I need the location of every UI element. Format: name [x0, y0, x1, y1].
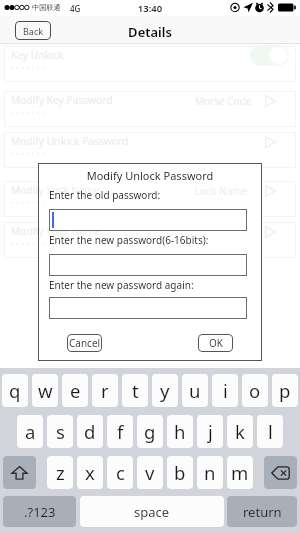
staticText: 中国联通 — [32, 3, 61, 12]
staticText: Key Unlock — [11, 48, 64, 62]
staticText: b — [174, 460, 186, 485]
button[interactable]: p — [272, 374, 298, 407]
button[interactable]: Modify User Name — [4, 222, 296, 258]
button[interactable]: z — [47, 456, 73, 489]
staticText: l — [268, 419, 273, 444]
staticText: Modify Unlock Password — [11, 134, 129, 148]
staticText: w — [38, 378, 53, 403]
staticText: d — [84, 419, 96, 444]
staticText: 4G — [70, 3, 81, 14]
button[interactable]: .?123 — [3, 496, 76, 527]
staticText: q — [9, 378, 21, 403]
staticText: u — [189, 378, 201, 403]
staticText: • • • • • • • — [11, 197, 45, 208]
staticText: 13:40 — [0, 2, 300, 15]
staticText: • • • • • • • — [11, 197, 45, 208]
staticText: z — [56, 460, 65, 485]
button[interactable] — [49, 209, 247, 231]
button[interactable]: Modify User Name — [4, 222, 296, 258]
button[interactable]: Modify Key Password — [4, 91, 296, 127]
staticText: Modify Unlock Password — [11, 134, 129, 148]
staticText: Enter the new password again: — [49, 278, 194, 292]
button[interactable]: x — [77, 456, 103, 489]
button[interactable]: OK — [198, 334, 233, 352]
button[interactable]: space — [80, 496, 224, 527]
button[interactable]: return — [227, 496, 297, 527]
button[interactable]: k — [227, 415, 253, 448]
button[interactable]: Modify Lock Name — [4, 181, 296, 217]
button[interactable]: h — [167, 415, 193, 448]
staticText: Enter the old password: — [49, 188, 161, 202]
button[interactable]: o — [242, 374, 268, 407]
button[interactable]: a — [17, 415, 43, 448]
button[interactable]: c — [107, 456, 133, 489]
button[interactable]: v — [137, 456, 163, 489]
staticText: Details — [0, 23, 300, 41]
staticText: g — [144, 419, 156, 444]
button[interactable]: g — [137, 415, 163, 448]
button[interactable]: l — [257, 415, 283, 448]
staticText: Back — [23, 25, 44, 37]
staticText: space — [134, 503, 170, 521]
button[interactable]: Cancel — [67, 334, 102, 352]
staticText: m — [231, 460, 249, 485]
staticText: Modify User Name — [11, 224, 101, 238]
staticText: Enter the new password(6-16bits): — [49, 233, 209, 247]
staticText: Modify Key Password — [11, 93, 113, 107]
staticText: j — [208, 419, 213, 444]
button[interactable]: b — [167, 456, 193, 489]
button[interactable]: e — [62, 374, 88, 407]
button[interactable]: f — [107, 415, 133, 448]
button[interactable]: s — [47, 415, 73, 448]
staticText: OK — [209, 336, 223, 350]
staticText: p — [279, 378, 291, 403]
staticText: return — [243, 503, 282, 521]
staticText: i — [223, 378, 228, 403]
staticText: k — [235, 419, 245, 444]
staticText: Modify User Name — [11, 224, 101, 238]
staticText: Modify Key Password — [11, 93, 113, 107]
button[interactable]: d — [77, 415, 103, 448]
button[interactable]: y — [152, 374, 178, 407]
staticText: .?123 — [24, 503, 56, 521]
button[interactable]: j — [197, 415, 223, 448]
button[interactable]: Shift — [3, 456, 36, 489]
button[interactable]: Modify Unlock Password — [4, 132, 296, 168]
staticText: Cancel — [69, 336, 101, 350]
staticText: a — [25, 419, 36, 444]
button[interactable]: t — [122, 374, 148, 407]
staticText: x — [85, 460, 95, 485]
staticText: h — [174, 419, 186, 444]
staticText: Modify Lock Name — [11, 183, 100, 197]
button[interactable] — [49, 254, 247, 276]
button[interactable]: Back — [15, 21, 51, 40]
staticText: o — [249, 378, 261, 403]
staticText: r — [101, 378, 109, 403]
staticText: Key Unlock — [11, 48, 64, 62]
button[interactable]: w — [32, 374, 58, 407]
button[interactable]: u — [182, 374, 208, 407]
button[interactable]: i — [212, 374, 238, 407]
button[interactable]: r — [92, 374, 118, 407]
button[interactable]: q — [2, 374, 28, 407]
staticText: f — [117, 419, 124, 444]
button[interactable] — [49, 297, 247, 319]
button[interactable]: Modify Key Password — [4, 91, 296, 127]
button[interactable]: n — [197, 456, 223, 489]
button[interactable]: Modify Unlock Password — [4, 132, 296, 168]
staticText: • • • • • • • — [11, 238, 45, 249]
staticText: c — [116, 460, 125, 485]
staticText: • • • • • • • — [11, 238, 45, 249]
button[interactable]: Modify Lock Name — [4, 181, 296, 217]
button[interactable]: m — [227, 456, 253, 489]
button[interactable]: Backspace — [264, 456, 297, 489]
staticText: v — [145, 460, 155, 485]
button[interactable]: Key Unlock — [4, 46, 296, 82]
staticText: s — [56, 419, 65, 444]
staticText: t — [132, 378, 139, 403]
button[interactable]: Key Unlock — [4, 46, 296, 82]
